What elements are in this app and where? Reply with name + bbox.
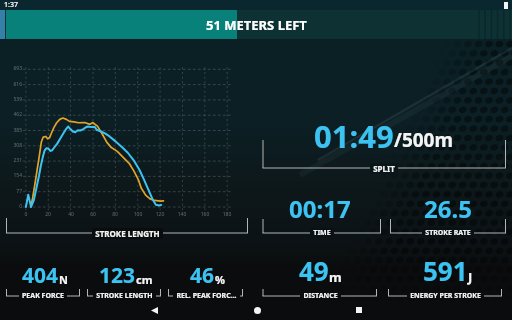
- staticText: 231: [0, 157, 22, 164]
- staticText: STROKE LENGTH: [96, 291, 153, 300]
- button[interactable]: ENERGY PER STROKE: [0, 0, 512, 320]
- staticText: 0: [16, 211, 36, 218]
- staticText: J: [468, 268, 473, 286]
- staticText: 539: [0, 96, 22, 103]
- staticText: %: [215, 272, 225, 287]
- staticText: 385: [0, 127, 22, 134]
- staticText: 1:37: [4, 0, 18, 10]
- staticText: SPLIT: [373, 163, 395, 174]
- staticText: 100: [128, 211, 148, 218]
- staticText: N: [59, 272, 68, 287]
- staticText: 154: [0, 172, 22, 179]
- button[interactable]: STROKE LENGTH: [0, 0, 512, 320]
- button[interactable]: DISTANCE: [0, 0, 512, 320]
- staticText: /500m: [394, 127, 454, 153]
- staticText: TIME: [313, 228, 331, 237]
- button[interactable]: REL. PEAK FORC...: [0, 0, 512, 320]
- staticText: 123: [99, 261, 136, 287]
- button[interactable]: TIME: [0, 0, 512, 320]
- staticText: 60: [83, 211, 103, 218]
- staticText: 20: [38, 211, 58, 218]
- staticText: 40: [61, 211, 81, 218]
- button[interactable]: STROKE RATE: [0, 0, 512, 320]
- staticText: 0: [0, 203, 22, 210]
- staticText: 01:49: [314, 115, 394, 154]
- staticText: 462: [0, 111, 22, 118]
- staticText: REL. PEAK FORC...: [176, 291, 237, 300]
- staticText: 00:17: [289, 192, 351, 222]
- staticText: cm: [136, 272, 153, 287]
- button[interactable]: PEAK FORCE: [0, 0, 512, 320]
- staticText: 160: [195, 211, 215, 218]
- staticText: DISTANCE: [303, 291, 338, 300]
- staticText: 693: [0, 65, 22, 72]
- staticText: PEAK FORCE: [22, 291, 64, 300]
- button[interactable]: Home: [206, 300, 308, 320]
- staticText: 26.5: [424, 192, 472, 222]
- staticText: 591: [423, 253, 468, 286]
- staticText: 404: [22, 261, 59, 287]
- button[interactable]: Recent apps: [308, 300, 410, 320]
- staticText: ENERGY PER STROKE: [410, 291, 481, 300]
- button[interactable]: STROKE LENGTH: [0, 0, 512, 320]
- button[interactable]: 51 METERS LEFT: [0, 10, 512, 39]
- button[interactable]: Back: [103, 300, 206, 320]
- staticText: 140: [172, 211, 192, 218]
- staticText: 77: [0, 188, 22, 195]
- staticText: 120: [150, 211, 170, 218]
- button[interactable]: SPLIT: [0, 0, 512, 320]
- staticText: 80: [105, 211, 125, 218]
- staticText: 49: [299, 253, 329, 286]
- staticText: STROKE RATE: [425, 228, 471, 237]
- staticText: STROKE LENGTH: [95, 228, 160, 239]
- staticText: 308: [0, 142, 22, 149]
- staticText: m: [329, 268, 342, 286]
- staticText: 616: [0, 81, 22, 88]
- staticText: 180: [217, 211, 237, 218]
- staticText: 46: [190, 261, 215, 287]
- staticText: 51 METERS LEFT: [206, 16, 307, 34]
